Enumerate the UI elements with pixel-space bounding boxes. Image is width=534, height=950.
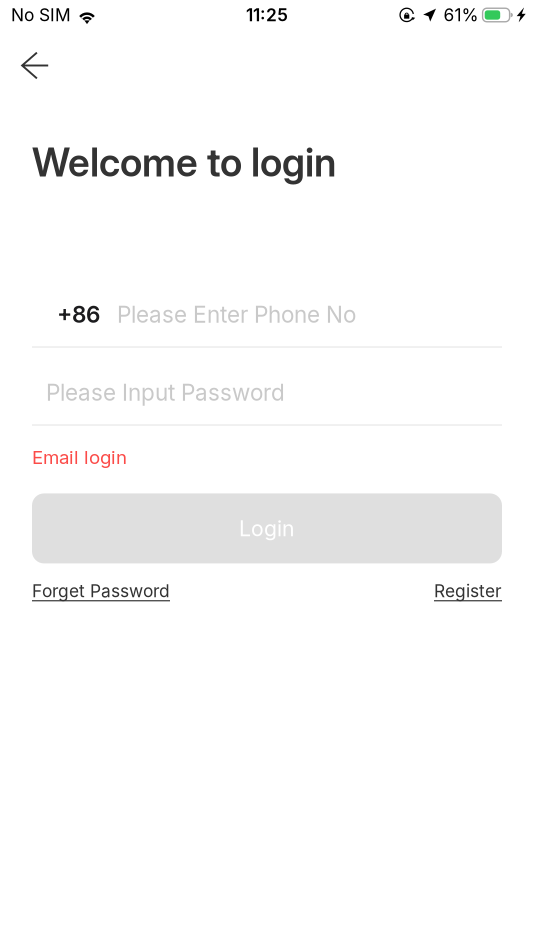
staticText: Login xyxy=(239,515,295,541)
button[interactable]: Email login xyxy=(32,443,127,471)
staticText: No SIM xyxy=(11,4,71,25)
staticText: 61% xyxy=(444,4,479,25)
staticText: Forget Password xyxy=(32,580,170,601)
button[interactable]: Register xyxy=(434,577,502,604)
staticText: 11:25 xyxy=(246,4,288,25)
staticText: Register xyxy=(434,580,502,601)
button[interactable]: Login xyxy=(32,493,502,563)
staticText: Email login xyxy=(32,446,127,468)
staticText: Welcome to login xyxy=(32,139,336,186)
button[interactable]: Forget Password xyxy=(32,577,170,604)
staticText: +86 xyxy=(57,301,100,328)
button[interactable]: Back xyxy=(0,45,69,86)
staticText: Please Enter Phone No xyxy=(117,301,356,328)
staticText: Please Input Password xyxy=(46,379,285,406)
